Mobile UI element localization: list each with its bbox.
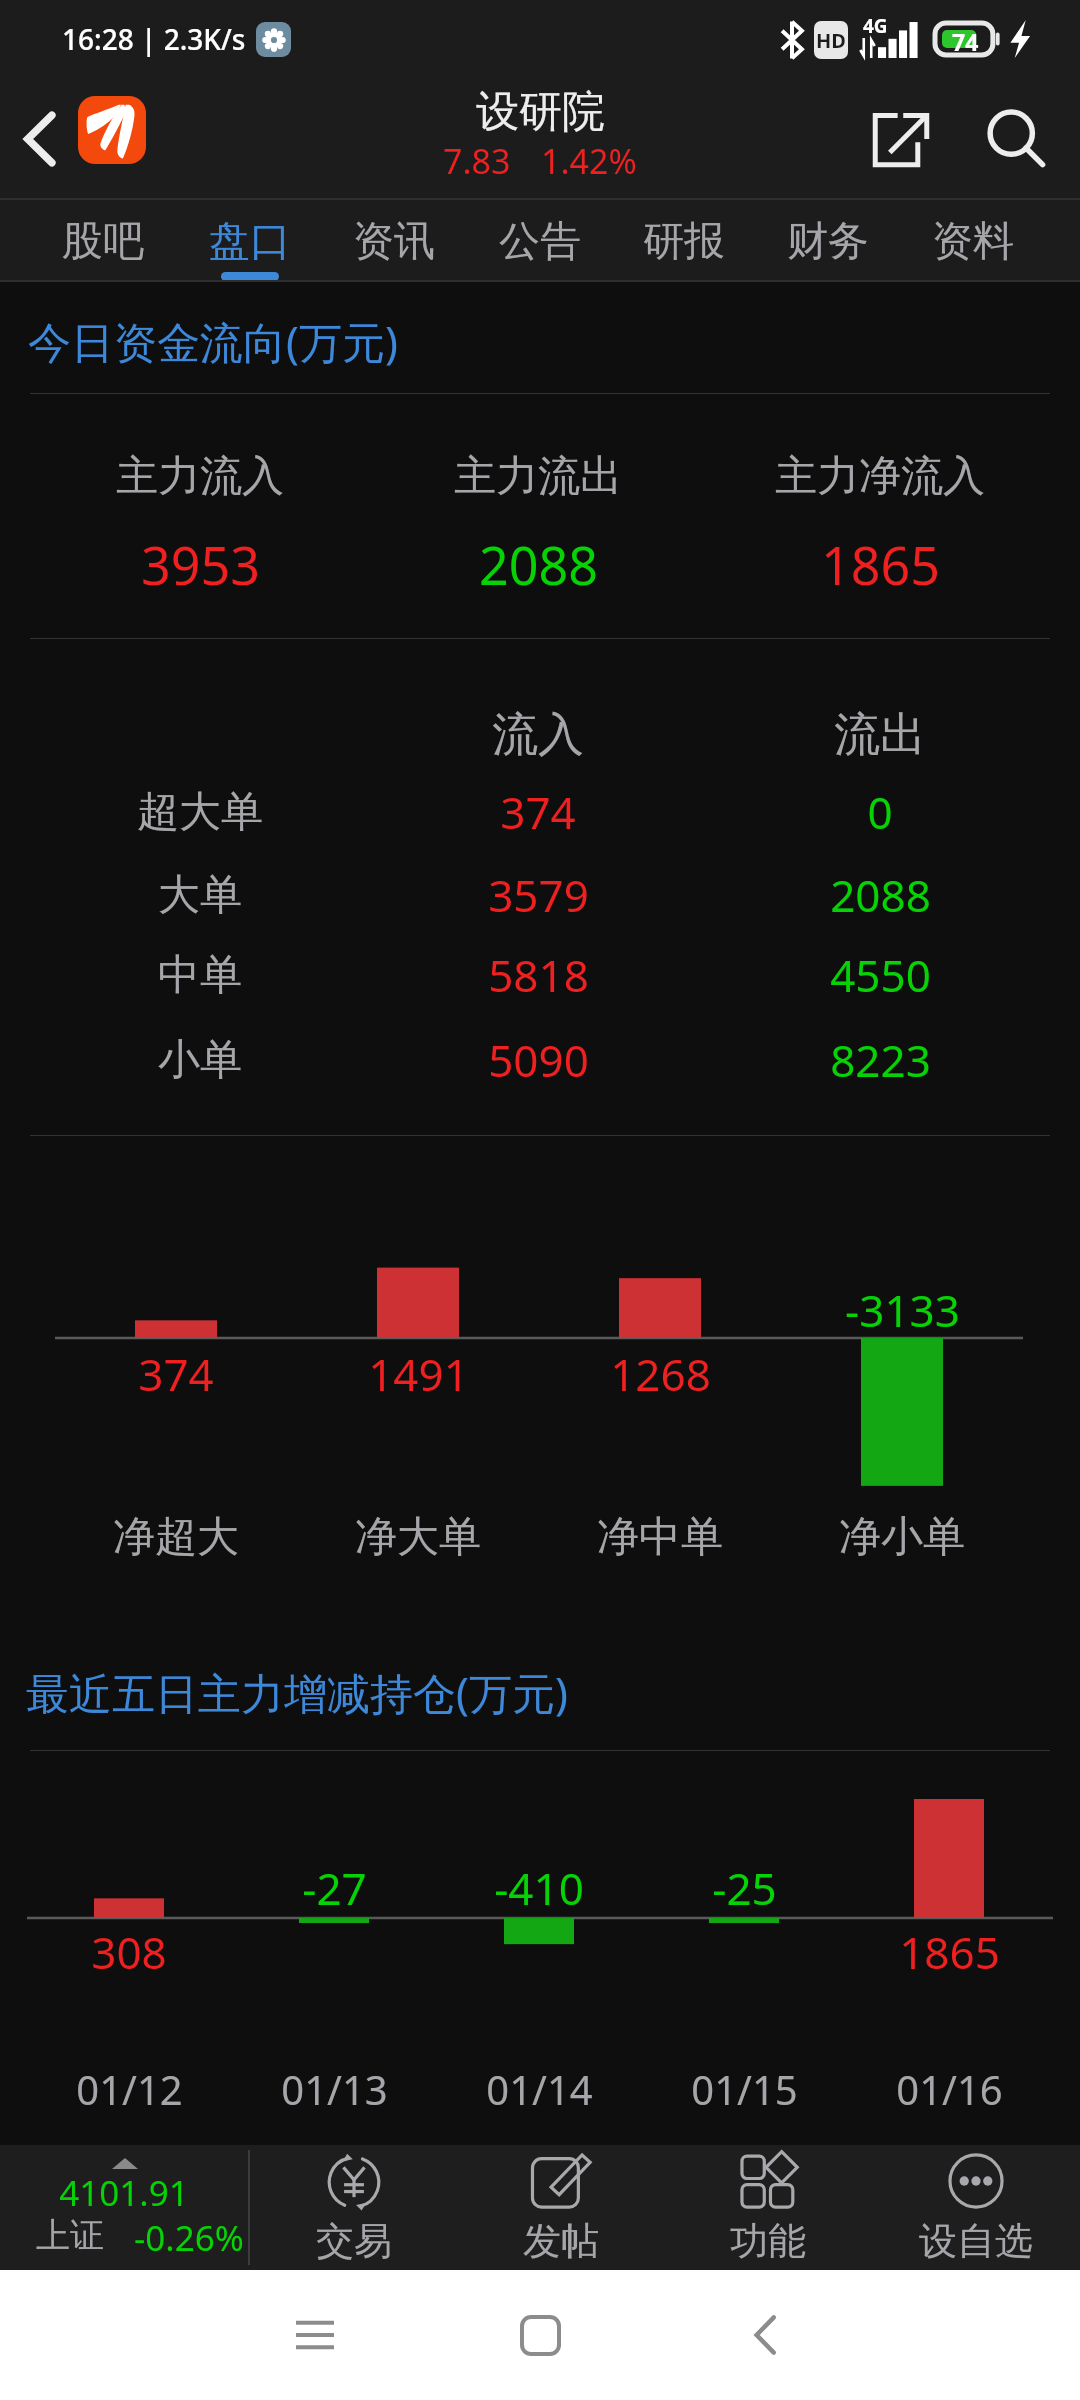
- staticText: 01/13: [281, 2062, 388, 2116]
- button[interactable]: 交易: [250, 2145, 457, 2270]
- button[interactable]: 研报: [612, 198, 756, 282]
- staticText: 超大单: [137, 786, 263, 839]
- staticText: 308: [91, 1922, 167, 1978]
- staticText: 主力净流入: [775, 450, 985, 503]
- staticText: 1.42%: [541, 138, 637, 184]
- staticText: -27: [302, 1858, 367, 1914]
- staticText: 净中单: [597, 1511, 723, 1564]
- staticText: 净小单: [839, 1511, 965, 1564]
- staticText: 设自选: [919, 2217, 1033, 2265]
- staticText: 净超大: [113, 1511, 239, 1564]
- staticText: 盘口: [209, 216, 291, 268]
- button[interactable]: Back: [0, 89, 78, 189]
- staticText: -3133: [845, 1280, 960, 1336]
- staticText: 2088: [479, 529, 598, 600]
- button[interactable]: 资料: [901, 198, 1045, 282]
- button[interactable]: Recent apps: [265, 2270, 365, 2400]
- staticText: -410: [494, 1858, 584, 1914]
- button[interactable]: 公告: [468, 198, 612, 282]
- staticText: -0.26%: [134, 2214, 244, 2256]
- staticText: 股吧: [62, 216, 144, 268]
- staticText: 发帖: [523, 2217, 599, 2265]
- staticText: 净大单: [355, 1511, 481, 1564]
- staticText: 4G: [863, 13, 888, 39]
- staticText: 374: [500, 782, 576, 842]
- button[interactable]: Share: [841, 97, 961, 181]
- staticText: 研报: [643, 216, 725, 268]
- staticText: -25: [712, 1858, 777, 1914]
- button[interactable]: 资讯: [322, 198, 466, 282]
- staticText: 4550: [830, 945, 931, 1005]
- staticText: 01/12: [76, 2062, 183, 2116]
- staticText: 2088: [830, 865, 931, 925]
- staticText: 公告: [499, 216, 581, 268]
- staticText: 1865: [821, 529, 940, 600]
- button[interactable]: 发帖: [457, 2145, 664, 2270]
- staticText: 流入: [492, 706, 584, 764]
- staticText: 01/16: [896, 2062, 1003, 2116]
- staticText: 7.83: [443, 138, 511, 184]
- staticText: 最近五日主力增减持仓(万元): [26, 1663, 568, 1722]
- staticText: 5818: [488, 945, 589, 1005]
- button[interactable]: East Money logo: [78, 96, 146, 164]
- staticText: 设研院: [476, 85, 605, 137]
- staticText: 大单: [158, 869, 242, 922]
- staticText: 74: [952, 26, 979, 57]
- staticText: 流出: [834, 706, 926, 764]
- staticText: 16:28 | 2.3K/s: [62, 20, 246, 58]
- staticText: 1268: [610, 1344, 711, 1400]
- button[interactable]: 财务: [756, 198, 900, 282]
- staticText: 4101.91: [59, 2169, 189, 2211]
- staticText: 资讯: [353, 216, 435, 268]
- staticText: 交易: [316, 2217, 392, 2265]
- staticText: 财务: [787, 216, 869, 268]
- staticText: 01/15: [691, 2062, 798, 2116]
- staticText: 374: [138, 1344, 214, 1400]
- button[interactable]: 4101.91: [0, 2145, 248, 2270]
- staticText: 资料: [932, 216, 1014, 268]
- staticText: 中单: [158, 949, 242, 1002]
- button[interactable]: Search: [957, 97, 1077, 181]
- staticText: 0: [867, 782, 893, 842]
- button[interactable]: 功能: [664, 2145, 872, 2270]
- staticText: 1865: [899, 1922, 1000, 1978]
- button[interactable]: 设自选: [872, 2145, 1080, 2270]
- staticText: 上证: [36, 2214, 104, 2256]
- staticText: 01/14: [486, 2062, 593, 2116]
- staticText: 主力流入: [116, 450, 284, 503]
- staticText: 8223: [830, 1030, 931, 1090]
- staticText: 今日资金流向(万元): [28, 312, 398, 371]
- staticText: 3953: [141, 529, 260, 600]
- button[interactable]: Home: [490, 2270, 590, 2400]
- button[interactable]: 盘口: [178, 198, 322, 282]
- staticText: 功能: [730, 2217, 806, 2265]
- staticText: 小单: [158, 1034, 242, 1087]
- button[interactable]: 股吧: [31, 198, 175, 282]
- staticText: 主力流出: [454, 450, 622, 503]
- staticText: 5090: [488, 1030, 589, 1090]
- staticText: HD: [816, 27, 846, 54]
- staticText: 1491: [368, 1344, 469, 1400]
- staticText: 3579: [488, 865, 589, 925]
- button[interactable]: Back: [715, 2270, 815, 2400]
